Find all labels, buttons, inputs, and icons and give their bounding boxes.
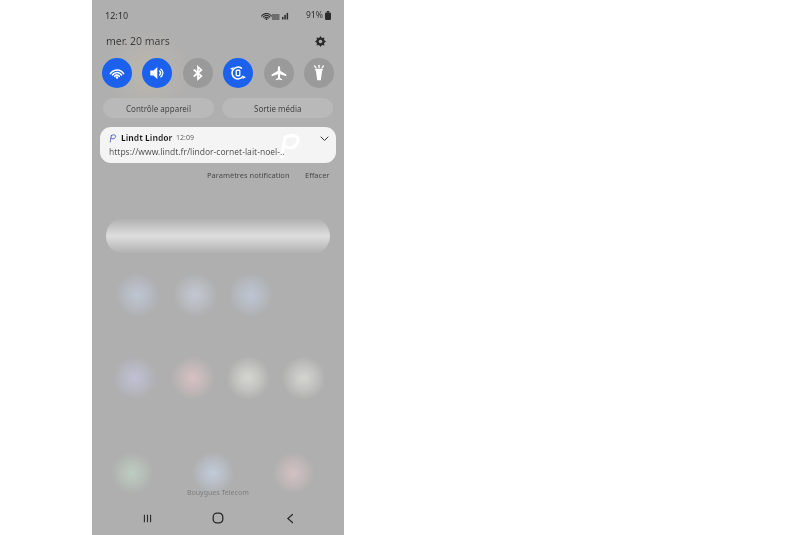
button[interactable]: Sortie média	[222, 98, 333, 118]
staticText: mer. 20 mars	[106, 34, 170, 48]
staticText: 91%	[306, 9, 323, 21]
button[interactable]: Accueil	[201, 501, 235, 535]
staticText: Lindt Lindor	[121, 132, 173, 144]
button[interactable]: Rotation auto	[223, 58, 253, 88]
button[interactable]: Mode avion	[264, 58, 294, 88]
button[interactable]: Lampe torche	[304, 58, 334, 88]
staticText: 12:09	[176, 133, 194, 143]
staticText: Effacer	[305, 170, 330, 180]
staticText: Sortie média	[254, 103, 302, 114]
button[interactable]: Paramètres	[310, 31, 330, 51]
button[interactable]: Son	[142, 58, 172, 88]
button[interactable]: Applications récentes	[130, 501, 164, 535]
button[interactable]: Effacer	[302, 168, 333, 182]
button[interactable]: Wi-Fi	[102, 58, 132, 88]
button[interactable]: Développer la notification	[317, 131, 331, 145]
staticText: Bouygues Telecom	[187, 488, 249, 498]
staticText: 12:10	[105, 9, 129, 21]
button[interactable]: Lindt Lindor	[100, 127, 336, 163]
staticText: Paramètres notification	[207, 170, 290, 180]
button[interactable]: Retour	[273, 501, 307, 535]
button[interactable]: Paramètres notification	[204, 168, 293, 182]
staticText: Contrôle appareil	[126, 103, 191, 114]
button[interactable]: Contrôle appareil	[103, 98, 214, 118]
staticText: https://www.lindt.fr/lindor-cornet-lait-…	[109, 146, 285, 158]
button[interactable]: Bluetooth	[183, 58, 213, 88]
